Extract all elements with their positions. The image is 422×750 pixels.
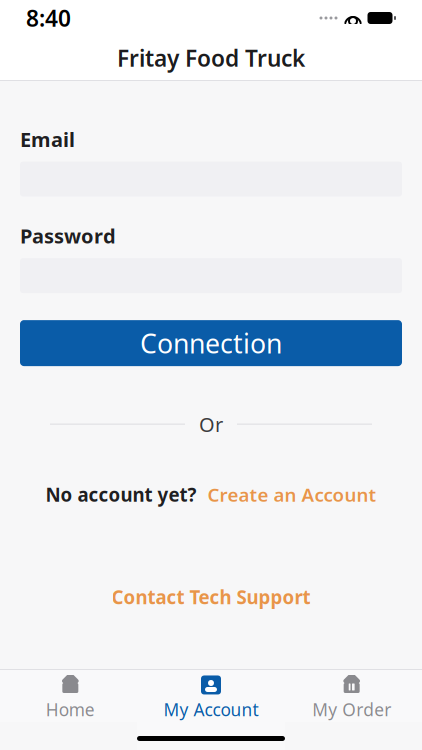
staticText: Fritay Food Truck (117, 43, 305, 73)
staticText: My Account (163, 698, 258, 721)
staticText: Home (46, 698, 95, 721)
staticText: Connection (140, 325, 282, 361)
button[interactable]: Connection (20, 320, 402, 366)
button[interactable]: My Order (281, 674, 422, 722)
button[interactable]: My Account (141, 674, 281, 722)
staticText: Contact Tech Support (111, 584, 310, 609)
staticText: Or (199, 411, 223, 437)
staticText: Password (20, 223, 116, 249)
staticText: Email (20, 126, 75, 153)
staticText: No account yet? (45, 482, 196, 507)
button[interactable]: Create an Account (207, 482, 376, 507)
staticText: 8:40 (26, 3, 71, 33)
button[interactable]: Contact Tech Support (20, 587, 402, 607)
staticText: My Order (312, 698, 391, 721)
staticText: Create an Account (207, 482, 376, 507)
button[interactable]: Home (0, 674, 141, 722)
